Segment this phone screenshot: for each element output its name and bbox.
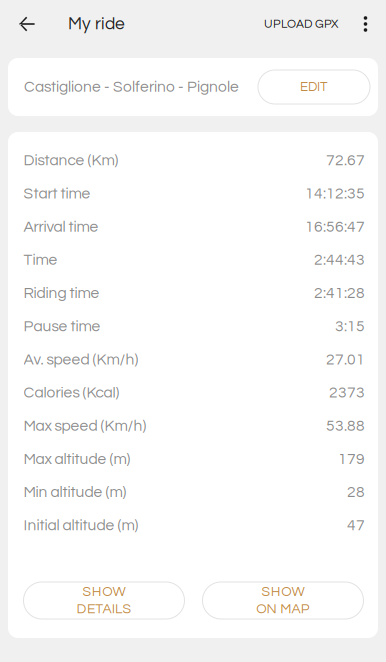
staticText: EDIT (300, 80, 328, 94)
staticText: Time (23, 252, 57, 268)
staticText: UPLOAD GPX (264, 18, 338, 30)
staticText: ON MAP (256, 602, 310, 616)
staticText: Distance (Km) (23, 153, 118, 168)
staticText: 28 (347, 484, 365, 500)
staticText: SHOW (262, 585, 304, 599)
button[interactable]: UPLOAD GPX (254, 0, 348, 48)
staticText: 72.67 (326, 153, 365, 168)
staticText: Max altitude (m) (23, 451, 130, 467)
staticText: 2373 (329, 385, 365, 401)
staticText: 47 (347, 518, 365, 533)
staticText: Arrival time (23, 219, 98, 235)
staticText: 2:41:28 (314, 285, 365, 301)
staticText: DETAILS (77, 602, 131, 616)
staticText: Start time (23, 186, 90, 202)
staticText: 27.01 (326, 352, 365, 368)
button[interactable]: EDIT (258, 70, 370, 104)
staticText: 179 (338, 451, 365, 467)
staticText: SHOW (83, 585, 125, 599)
button[interactable]: SHOW (202, 582, 363, 619)
button[interactable]: SHOW (23, 582, 184, 619)
staticText: Min altitude (m) (23, 484, 126, 500)
staticText: Riding time (23, 285, 99, 301)
staticText: My ride (68, 15, 125, 33)
staticText: Av. speed (Km/h) (23, 352, 138, 368)
staticText: 2:44:43 (314, 252, 365, 268)
button[interactable]: Back (0, 0, 54, 48)
button[interactable]: More options (348, 0, 383, 48)
staticText: Calories (Kcal) (23, 385, 119, 401)
staticText: Max speed (Km/h) (23, 418, 146, 434)
staticText: Initial altitude (m) (23, 518, 138, 533)
staticText: Castiglione - Solferino - Pignole (24, 79, 239, 95)
staticText: Pause time (23, 318, 100, 334)
staticText: 3:15 (335, 318, 365, 334)
staticText: 53.88 (326, 418, 365, 434)
staticText: 14:12:35 (305, 186, 365, 202)
staticText: 16:56:47 (305, 219, 365, 235)
